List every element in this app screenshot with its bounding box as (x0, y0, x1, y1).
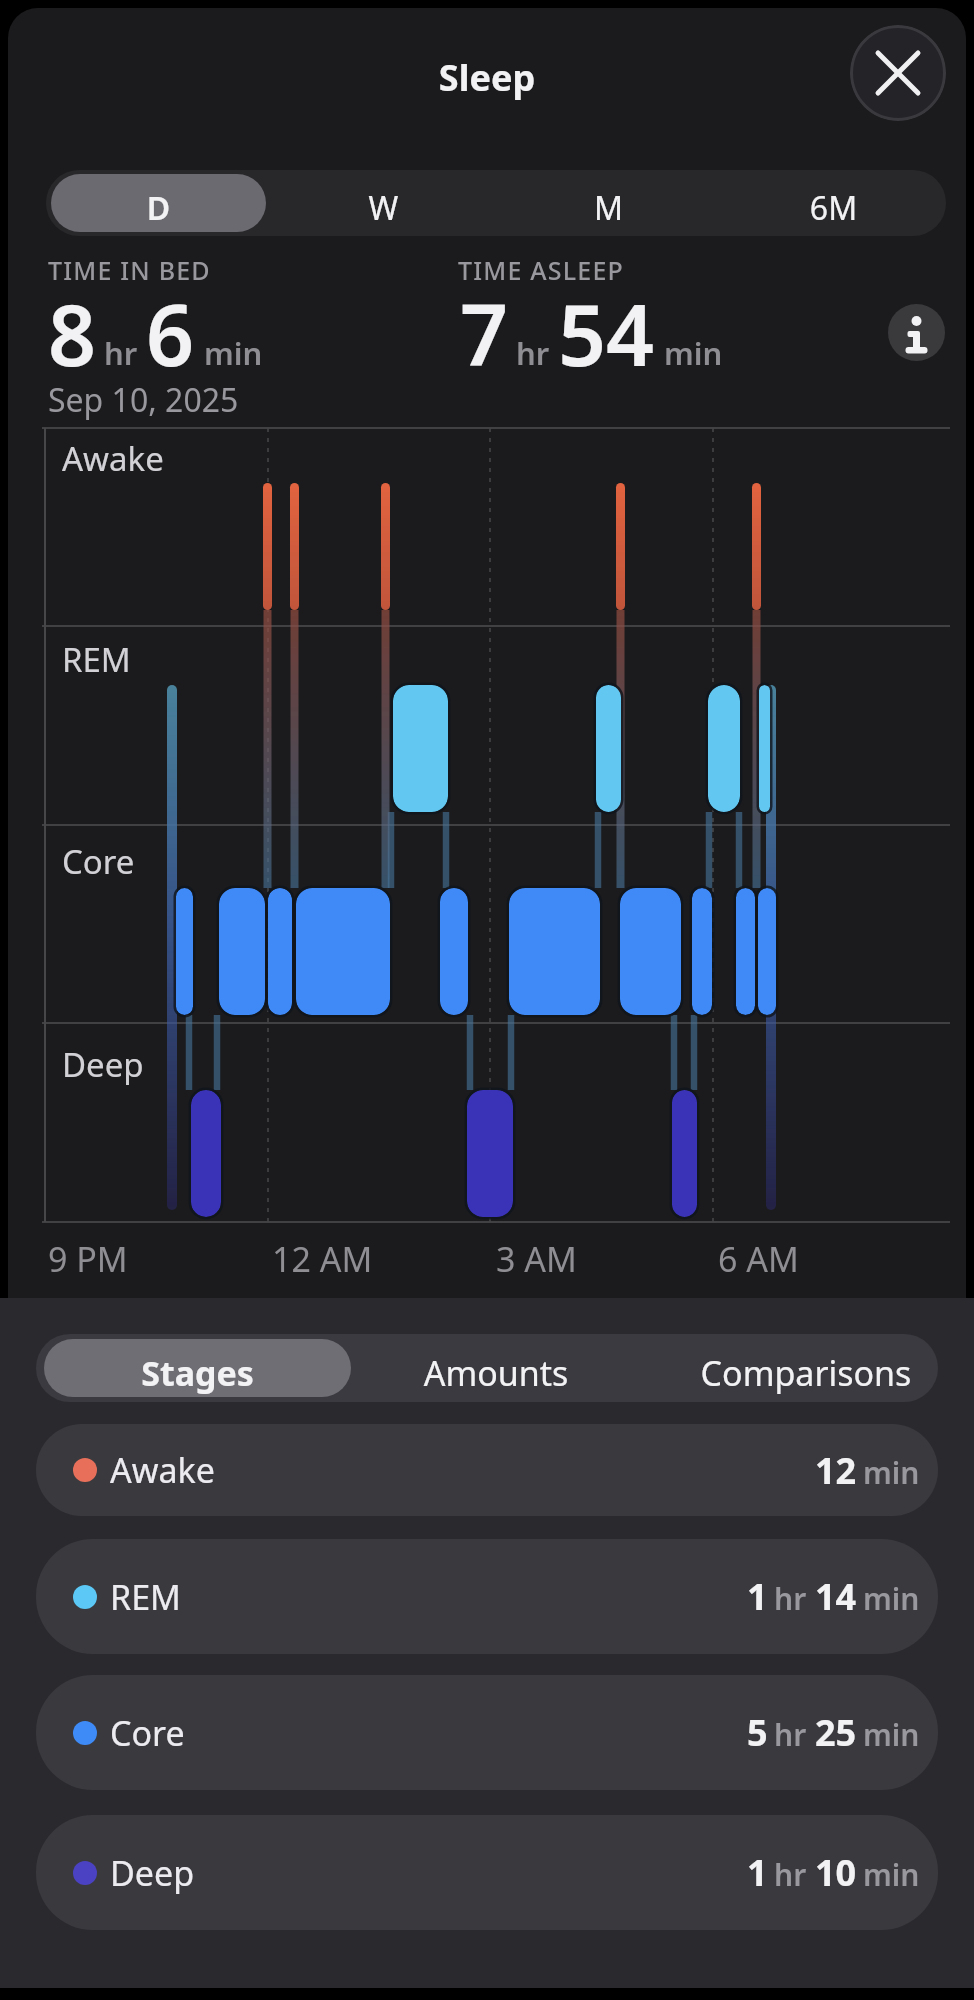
staticText: Comparisons (656, 1350, 956, 1396)
staticText: 6 AM (718, 1236, 799, 1282)
staticText: 12 AM (272, 1236, 373, 1282)
button[interactable] (888, 304, 945, 361)
staticText: Amounts (346, 1350, 646, 1396)
staticText: min (863, 1714, 920, 1755)
staticText: Deep (110, 1850, 195, 1896)
staticText: 14 (815, 1572, 857, 1621)
staticText: hr (104, 332, 138, 374)
staticText: Sep 10, 2025 (48, 378, 239, 422)
staticText: hr (774, 1854, 807, 1895)
staticText: 1 (747, 1848, 768, 1897)
button[interactable]: Awake (36, 1424, 938, 1516)
staticText: 5 (747, 1708, 768, 1757)
button[interactable] (656, 1334, 938, 1402)
staticText: hr (774, 1714, 807, 1755)
staticText: 7 (460, 276, 509, 390)
button[interactable] (496, 170, 721, 236)
staticText: 6 (146, 276, 195, 390)
button[interactable]: REM (36, 1539, 938, 1654)
staticText: Deep (62, 1042, 144, 1087)
staticText: Core (62, 839, 135, 884)
staticText: 6M (721, 186, 946, 230)
staticText: TIME ASLEEP (458, 253, 625, 287)
button[interactable] (351, 1334, 646, 1402)
staticText: Core (110, 1710, 185, 1756)
staticText: 12 (815, 1446, 857, 1495)
staticText: Sleep (0, 53, 974, 102)
staticText: min (863, 1578, 920, 1619)
button[interactable] (271, 170, 496, 236)
staticText: REM (62, 637, 131, 682)
staticText: 54 (558, 276, 655, 390)
staticText: 9 PM (48, 1236, 128, 1282)
staticText: min (863, 1452, 920, 1493)
staticText: 25 (815, 1708, 857, 1757)
staticText: hr (516, 332, 550, 374)
staticText: Awake (110, 1447, 215, 1493)
button[interactable] (51, 174, 266, 232)
staticText: hr (774, 1578, 807, 1619)
staticText: Awake (62, 436, 164, 481)
staticText: REM (110, 1574, 181, 1620)
staticText: 8 (48, 276, 97, 390)
button[interactable] (721, 170, 946, 236)
staticText: 3 AM (496, 1236, 577, 1282)
button[interactable]: Core (36, 1675, 938, 1790)
staticText: W (271, 186, 496, 230)
staticText: min (863, 1854, 920, 1895)
staticText: TIME IN BED (48, 253, 211, 287)
staticText: D (46, 186, 271, 230)
staticText: Stages (44, 1350, 351, 1396)
button[interactable]: Deep (36, 1815, 938, 1930)
staticText: min (204, 332, 263, 374)
button[interactable] (44, 1339, 351, 1397)
staticText: min (664, 332, 723, 374)
staticText: 1 (747, 1572, 768, 1621)
staticText: 10 (815, 1848, 857, 1897)
staticText: M (496, 186, 721, 230)
button[interactable] (850, 25, 946, 121)
